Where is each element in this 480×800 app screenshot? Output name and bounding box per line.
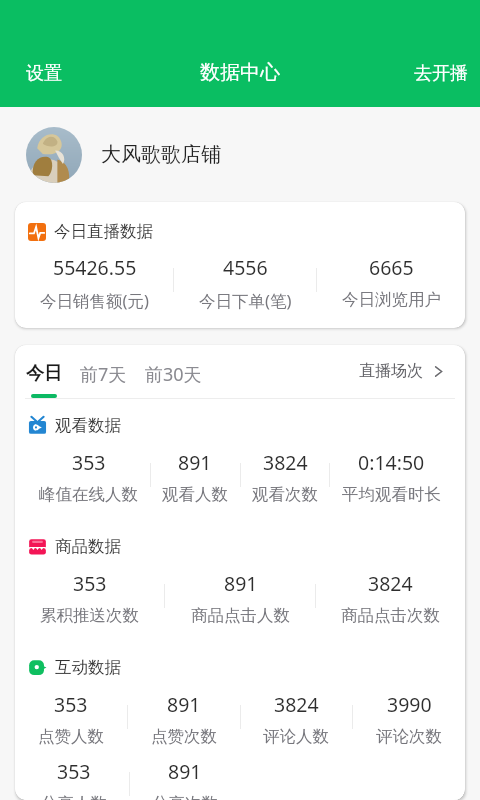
button[interactable]: 直播场次: [345, 355, 465, 387]
staticText: 观看次数: [252, 484, 318, 505]
staticText: 前7天: [80, 362, 127, 387]
staticText: 商品数据: [55, 536, 121, 557]
staticText: 4556: [223, 254, 268, 281]
other: 直播场次: [432, 365, 445, 378]
button[interactable]: 前7天: [75, 345, 132, 396]
button[interactable]: 去开播: [394, 58, 480, 93]
staticText: 353: [57, 758, 91, 785]
staticText: 设置: [26, 62, 62, 85]
staticText: 3990: [387, 691, 432, 718]
staticText: 353: [73, 570, 107, 597]
staticText: 商品点击次数: [341, 605, 440, 626]
staticText: 平均观看时长: [342, 484, 441, 505]
staticText: 353: [54, 691, 88, 718]
staticText: 观看人数: [162, 484, 228, 505]
staticText: 累积推送次数: [40, 605, 139, 626]
staticText: 数据中心: [200, 60, 280, 85]
staticText: 去开播: [414, 62, 468, 85]
staticText: 点赞人数: [38, 726, 104, 747]
button[interactable]: 今日: [21, 345, 67, 398]
button[interactable]: 前30天: [140, 345, 207, 396]
staticText: 55426.55: [53, 254, 137, 281]
staticText: 今日下单(笔): [199, 289, 292, 312]
button[interactable]: 设置: [0, 58, 82, 93]
staticText: 3824: [368, 570, 413, 597]
staticText: 互动数据: [55, 657, 121, 678]
staticText: 点赞次数: [151, 726, 217, 747]
staticText: 891: [167, 691, 201, 718]
staticText: 今日直播数据: [54, 221, 153, 242]
staticText: 分享次数: [152, 793, 218, 800]
staticText: 大风歌歌店铺: [101, 142, 221, 167]
staticText: 6665: [369, 254, 414, 281]
staticText: 353: [72, 449, 106, 476]
staticText: 3824: [263, 449, 308, 476]
staticText: 891: [178, 449, 212, 476]
button[interactable]: 大风歌歌店铺: [0, 107, 480, 202]
staticText: 今日浏览用户: [342, 289, 441, 310]
staticText: 评论人数: [263, 726, 329, 747]
staticText: 891: [224, 570, 258, 597]
staticText: 今日销售额(元): [40, 289, 149, 312]
staticText: 分享人数: [41, 793, 107, 800]
staticText: 前30天: [145, 362, 202, 387]
staticText: 今日: [26, 362, 62, 385]
staticText: 峰值在线人数: [39, 484, 138, 505]
staticText: 直播场次: [359, 361, 423, 381]
staticText: 评论次数: [376, 726, 442, 747]
staticText: 891: [168, 758, 202, 785]
staticText: 商品点击人数: [191, 605, 290, 626]
staticText: 观看数据: [55, 415, 121, 436]
staticText: 3824: [274, 691, 319, 718]
staticText: 0:14:50: [358, 449, 425, 476]
